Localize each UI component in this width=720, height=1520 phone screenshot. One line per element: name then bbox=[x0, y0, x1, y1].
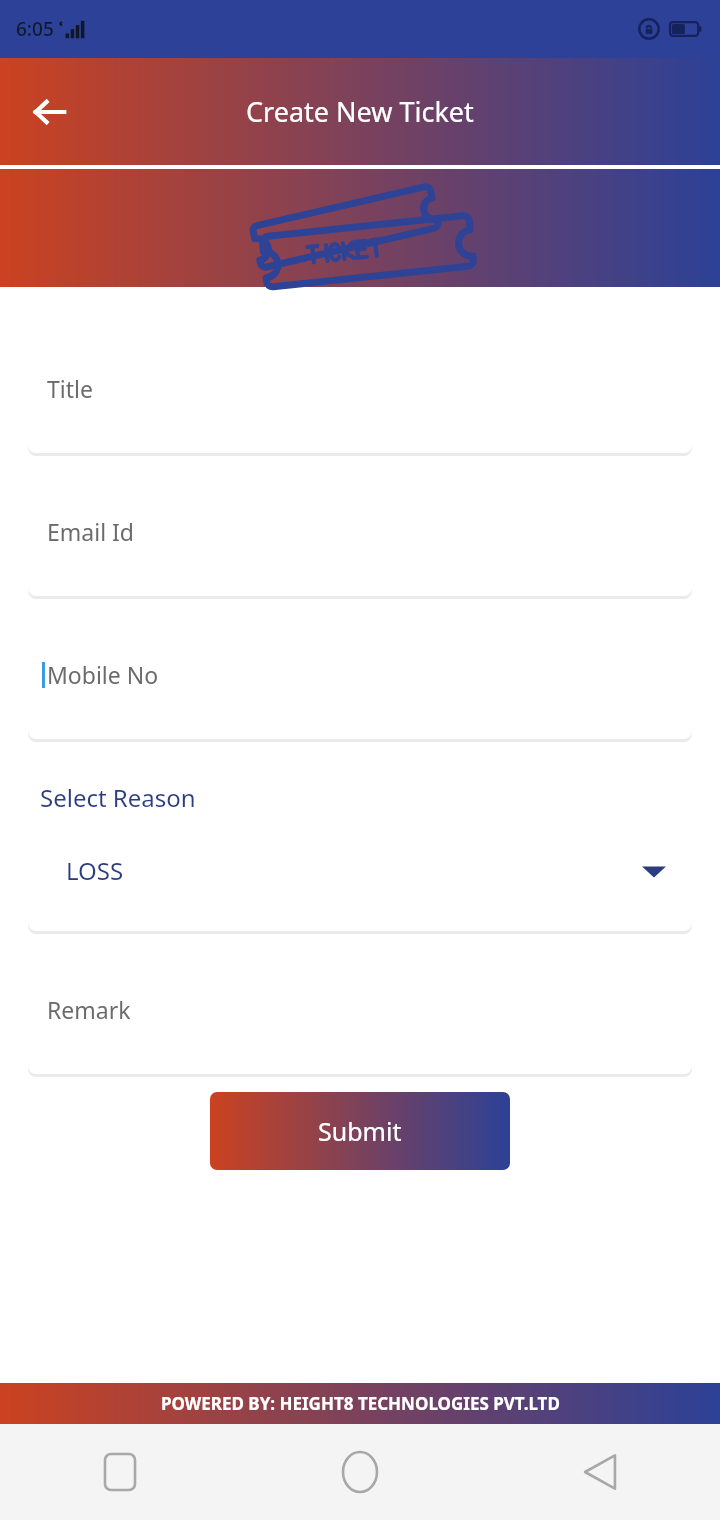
button[interactable]: Mobile No bbox=[28, 610, 692, 739]
staticText: Mobile No bbox=[47, 659, 159, 690]
staticText: Select Reason bbox=[40, 781, 196, 814]
button[interactable]: Recent apps bbox=[0, 1424, 240, 1520]
button[interactable]: Remark bbox=[28, 945, 692, 1074]
button[interactable]: Submit bbox=[210, 1092, 510, 1170]
staticText: Submit bbox=[318, 1114, 402, 1148]
staticText: Email Id bbox=[47, 516, 134, 547]
button[interactable]: Title bbox=[28, 324, 692, 453]
button[interactable]: Select Reason bbox=[28, 761, 692, 931]
button[interactable]: Back bbox=[22, 84, 78, 140]
staticText: LOSS bbox=[66, 854, 124, 887]
staticText: 6:05 bbox=[16, 16, 54, 42]
staticText: Create New Ticket bbox=[246, 93, 474, 130]
staticText: Title bbox=[47, 373, 93, 404]
button[interactable]: Email Id bbox=[28, 467, 692, 596]
staticText: POWERED BY: HEIGHT8 TECHNOLOGIES PVT.LTD bbox=[161, 1392, 560, 1415]
button[interactable]: Back bbox=[480, 1424, 720, 1520]
staticText: Remark bbox=[47, 994, 131, 1025]
button[interactable]: Home bbox=[240, 1424, 480, 1520]
